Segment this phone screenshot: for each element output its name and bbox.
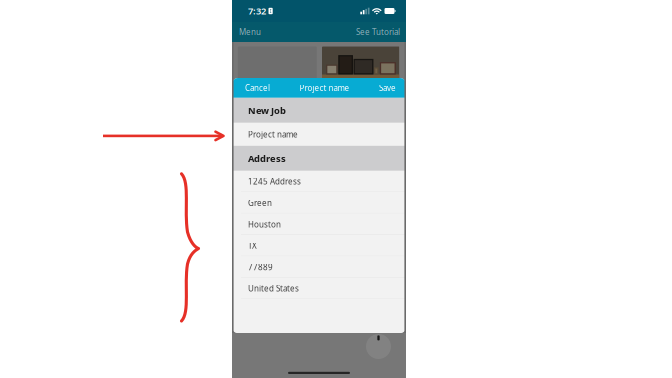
staticText: Project name (299, 82, 349, 93)
staticText: Green (248, 198, 272, 208)
button[interactable]: 77889 (232, 256, 406, 278)
staticText: TX (248, 240, 257, 251)
staticText: Houston (248, 219, 281, 230)
staticText: 77889 (248, 262, 273, 272)
button[interactable]: Menu (232, 23, 266, 41)
staticText: Project name (248, 129, 298, 140)
staticText: 1245 Address (248, 176, 301, 187)
staticText: United States (248, 283, 299, 294)
staticText: Address (248, 152, 286, 164)
staticText: Save (379, 82, 396, 93)
staticText: Cancel (245, 82, 270, 93)
button[interactable]: United States (232, 278, 406, 299)
button[interactable]: See Tutorial (351, 23, 406, 41)
staticText: 7:32 (248, 5, 266, 17)
staticText: See Tutorial (356, 27, 400, 37)
button[interactable]: Save (373, 77, 406, 98)
button[interactable]: Cancel (232, 77, 276, 98)
button[interactable]: 1245 Address (232, 171, 406, 192)
button[interactable]: Houston (232, 214, 406, 235)
staticText: New Job (248, 104, 286, 116)
button[interactable]: TX (232, 235, 406, 256)
button[interactable]: Green (232, 192, 406, 214)
staticText: Menu (239, 27, 261, 37)
button[interactable]: Project name (232, 123, 406, 146)
